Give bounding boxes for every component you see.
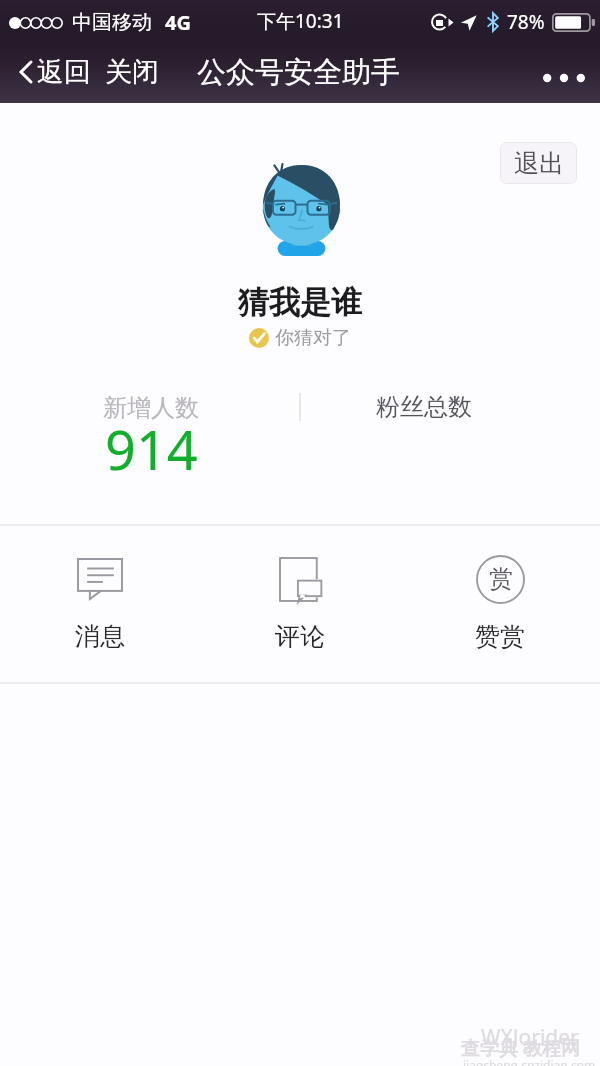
button[interactable]: 退出	[500, 142, 577, 184]
staticText: 新增人数	[103, 393, 199, 423]
staticText: 粉丝总数	[376, 392, 472, 422]
staticText: 猜我是谁	[238, 283, 362, 319]
staticText: WXJorider	[481, 1023, 579, 1052]
button[interactable]: 关闭	[100, 51, 164, 93]
button[interactable]: More options	[535, 62, 593, 94]
button[interactable]: 评论	[200, 525, 400, 682]
staticText: 赏	[489, 564, 513, 594]
button[interactable]: 赏	[400, 525, 600, 682]
staticText: 退出	[514, 148, 564, 179]
staticText: 你猜对了	[275, 326, 351, 350]
staticText: 公众号安全助手	[197, 54, 400, 91]
staticText: 下午10:31	[257, 8, 344, 34]
staticText: 914	[105, 412, 198, 486]
staticText: 赞赏	[475, 621, 525, 652]
staticText: 消息	[75, 621, 125, 652]
staticText: jiaocheng.cnzidian.com	[463, 1057, 596, 1066]
staticText: 4G	[165, 9, 191, 36]
staticText: 返回	[37, 55, 91, 89]
staticText: 评论	[275, 621, 325, 652]
button[interactable]: 消息	[0, 525, 200, 682]
button[interactable]: 返回	[14, 51, 96, 93]
staticText: 78%	[507, 9, 545, 35]
staticText: 中国移动	[72, 10, 152, 35]
staticText: 查学典 教程网	[461, 1035, 580, 1061]
